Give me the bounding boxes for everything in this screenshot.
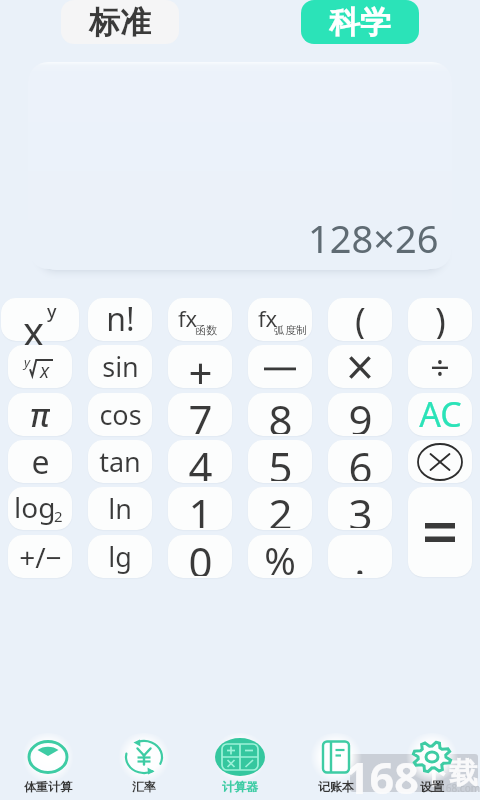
button[interactable]: ( [328, 298, 392, 341]
button[interactable]: 汇率 [98, 730, 190, 800]
staticText: y [47, 299, 57, 324]
staticText: cos [99, 396, 142, 433]
staticText: 128×26 [308, 212, 439, 264]
staticText: % [264, 534, 296, 577]
staticText: fx [178, 303, 198, 333]
button[interactable]: radian mode [248, 298, 312, 341]
staticText: log [14, 488, 56, 526]
staticText: lg [108, 538, 132, 575]
staticText: ln [108, 490, 132, 527]
button[interactable]: ÷ [408, 345, 472, 388]
staticText: 函数 [195, 323, 217, 337]
button[interactable]: 设置 [386, 730, 478, 800]
staticText: + [188, 344, 213, 387]
staticText: e [31, 440, 50, 483]
staticText: 6 [348, 438, 373, 481]
staticText: ( [355, 296, 366, 339]
staticText: 2 [268, 485, 293, 528]
staticText: ÷ [430, 344, 450, 387]
button[interactable]: 7 [168, 393, 232, 436]
button[interactable]: minus [248, 345, 312, 388]
button[interactable]: 2 [248, 487, 312, 530]
staticText: 汇率 [132, 779, 156, 794]
button[interactable]: log base 2 [8, 487, 72, 530]
staticText: 2 [54, 506, 63, 526]
button[interactable]: Display [28, 62, 452, 269]
staticText: ) [435, 296, 446, 339]
staticText: +/− [19, 538, 62, 576]
button[interactable]: 3 [328, 487, 392, 530]
staticText: x [23, 303, 45, 346]
button[interactable]: 科学 [301, 0, 419, 44]
staticText: 5 [268, 438, 293, 481]
staticText: 9 [348, 391, 373, 434]
button[interactable]: 0 [168, 535, 232, 578]
button[interactable]: . [328, 535, 392, 578]
staticText: 0 [188, 533, 213, 576]
button[interactable]: 6 [328, 440, 392, 483]
staticText: 4 [188, 438, 213, 481]
button[interactable]: nth root of x [8, 345, 72, 388]
button[interactable]: tan [88, 440, 152, 483]
button[interactable]: cos [88, 393, 152, 436]
button[interactable]: 体重计算 [2, 730, 94, 800]
button[interactable]: % [248, 535, 312, 578]
staticText: 168 [345, 748, 419, 800]
staticText: fx [258, 303, 278, 333]
staticText: 科学 [329, 3, 391, 42]
staticText: 设置 [420, 779, 444, 794]
staticText: 3 [348, 485, 373, 528]
button[interactable]: 8 [248, 393, 312, 436]
staticText: 记账本 [318, 779, 354, 794]
staticText: 下载 [420, 755, 478, 792]
button[interactable]: 标准 [61, 0, 179, 44]
staticText: π [30, 393, 50, 436]
button[interactable]: n! [88, 298, 152, 341]
staticText: 168.com [440, 781, 480, 795]
button[interactable]: + [168, 345, 232, 388]
staticText: 标准 [89, 3, 151, 42]
staticText: 弧度制 [274, 323, 307, 337]
staticText: 1 [188, 485, 213, 528]
button[interactable]: 4 [168, 440, 232, 483]
staticText: 计算器 [222, 779, 258, 794]
staticText: 8 [268, 391, 293, 434]
button[interactable]: sin [88, 345, 152, 388]
staticText: y [24, 353, 31, 371]
button[interactable]: 1 [168, 487, 232, 530]
button[interactable]: function [168, 298, 232, 341]
staticText: AC [419, 391, 462, 434]
staticText: n! [106, 297, 135, 340]
button[interactable]: equals [408, 487, 472, 577]
button[interactable]: ) [408, 298, 472, 341]
button[interactable]: ln [88, 487, 152, 530]
button[interactable]: +/− [8, 535, 72, 578]
button[interactable]: AC [408, 393, 472, 436]
staticText: 7 [188, 391, 213, 434]
staticText: tan [99, 443, 141, 480]
button[interactable]: 9 [328, 393, 392, 436]
button[interactable]: 记账本 [290, 730, 382, 800]
button[interactable]: Delete [408, 440, 472, 483]
button[interactable]: 5 [248, 440, 312, 483]
button[interactable]: lg [88, 535, 152, 578]
button[interactable]: multiply [328, 345, 392, 388]
staticText: 体重计算 [24, 779, 72, 794]
button[interactable]: x to the power y [1, 298, 79, 341]
staticText: sin [102, 348, 139, 385]
staticText: . [354, 531, 366, 574]
button[interactable]: e [8, 440, 72, 483]
button[interactable]: π [8, 393, 72, 436]
staticText: x [40, 358, 50, 384]
button[interactable]: 计算器 [194, 730, 286, 800]
